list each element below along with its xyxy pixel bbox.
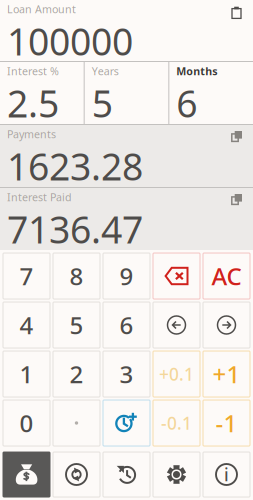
button[interactable]: -1 (203, 400, 250, 446)
staticText: 5 (92, 78, 113, 128)
staticText: AC (211, 260, 241, 292)
button[interactable]: Info (203, 452, 250, 497)
staticText: 2 (69, 358, 83, 390)
staticText: 2.5 (7, 78, 59, 128)
staticText: 3 (119, 358, 133, 390)
staticText: Interest % (7, 64, 59, 78)
staticText: Years (92, 64, 119, 78)
button[interactable]: Refinance (53, 452, 100, 497)
button[interactable]: 1 (3, 351, 50, 397)
staticText: Interest Paid (7, 190, 72, 204)
button[interactable]: History (103, 452, 150, 497)
button[interactable]: 5 (53, 302, 100, 348)
button[interactable]: Add term (103, 400, 150, 446)
staticText: i (224, 463, 229, 486)
button[interactable]: 6 (103, 302, 150, 348)
staticText: 1623.28 (7, 141, 143, 191)
staticText: Payments (7, 127, 56, 141)
button[interactable]: Loan (3, 452, 50, 497)
staticText: 7 (19, 260, 33, 292)
button[interactable]: 2 (53, 351, 100, 397)
button[interactable]: 0 (3, 400, 50, 446)
button[interactable]: Settings (153, 452, 200, 497)
button[interactable]: Delete (153, 253, 200, 299)
staticText: Months (176, 64, 217, 78)
button[interactable]: Next field (203, 302, 250, 348)
button[interactable]: Copy interest paid (231, 193, 243, 206)
button[interactable]: 9 (103, 253, 150, 299)
button[interactable]: Copy payments (231, 130, 243, 143)
staticText: 6 (176, 78, 197, 128)
button[interactable]: Previous field (153, 302, 200, 348)
staticText: 0 (19, 407, 33, 439)
staticText: 5 (69, 309, 83, 341)
button[interactable]: Decimal point (53, 400, 100, 446)
button[interactable]: 8 (53, 253, 100, 299)
staticText: -1 (215, 407, 237, 439)
staticText: 6 (119, 309, 133, 341)
staticText: +0.1 (159, 362, 194, 385)
button[interactable]: 3 (103, 351, 150, 397)
staticText: +1 (212, 358, 240, 390)
staticText: 100000 (7, 16, 133, 66)
staticText: 4 (19, 309, 33, 341)
staticText: Loan Amount (7, 2, 76, 16)
button[interactable]: 4 (3, 302, 50, 348)
staticText: 8 (69, 260, 83, 292)
staticText: 7136.47 (7, 204, 143, 254)
button[interactable]: AC (203, 253, 250, 299)
button[interactable]: 7 (3, 253, 50, 299)
button[interactable]: Paste (231, 6, 242, 19)
button[interactable]: +0.1 (153, 351, 200, 397)
staticText: 9 (119, 260, 133, 292)
button[interactable]: -0.1 (153, 400, 200, 446)
staticText: 1 (19, 358, 33, 390)
button[interactable]: +1 (203, 351, 250, 397)
staticText: -0.1 (161, 411, 192, 434)
